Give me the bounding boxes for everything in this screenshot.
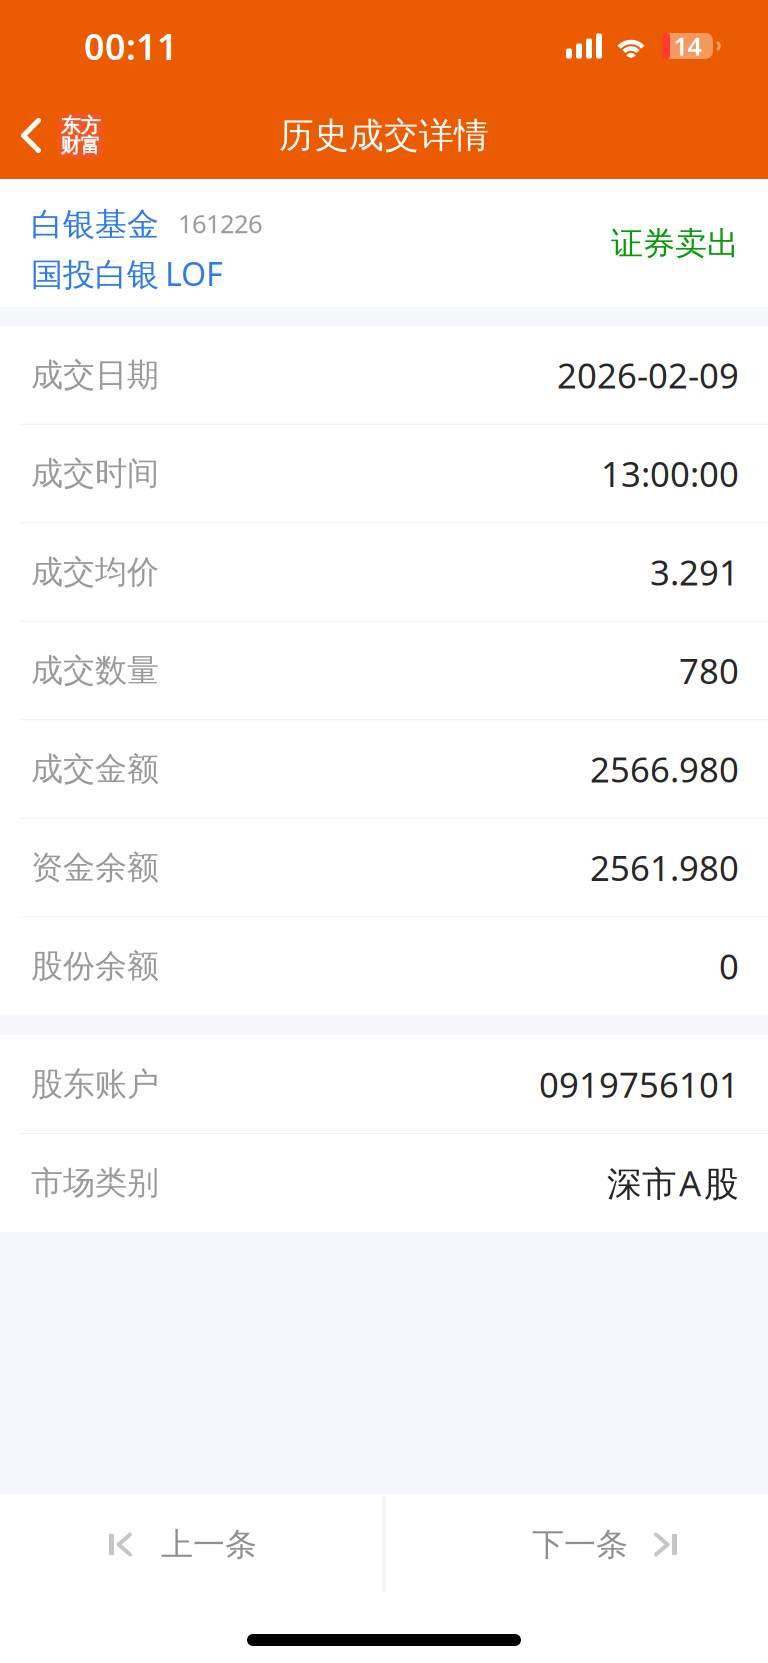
staticText: 资金余额 [31,848,159,887]
staticText: 深市 A 股 [607,1160,739,1206]
staticText: 国投白银 LOF [31,252,223,295]
staticText: 780 [679,647,739,693]
staticText: 161226 [178,206,262,240]
staticText: 00:11 [84,22,178,70]
staticText: 下一条 [532,1525,628,1564]
staticText: 14 [673,29,701,63]
staticText: 财富 [60,133,100,158]
staticText: 白银基金 [31,205,159,244]
staticText: 历史成交详情 [279,114,489,157]
button[interactable]: 上一条 [0,1494,383,1595]
staticText: 0 [719,943,739,989]
staticText: 成交数量 [31,651,159,690]
staticText: 证券卖出 [611,224,739,263]
staticText: 东方 [60,113,100,138]
staticText: 2026-02-09 [557,352,739,398]
staticText: 股份余额 [31,946,159,986]
staticText: 13:00:00 [601,450,739,496]
button[interactable]: 下一条 [384,1494,768,1595]
staticText: 成交时间 [31,454,159,493]
staticText: 2566.980 [590,746,739,792]
staticText: 上一条 [161,1525,257,1564]
staticText: 股东账户 [31,1065,159,1104]
staticText: 0919756101 [539,1061,739,1107]
staticText: 2561.980 [590,844,739,890]
staticText: 成交均价 [31,552,159,592]
staticText: 成交日期 [31,355,159,395]
button[interactable]: Back [0,100,104,170]
staticText: 成交金额 [31,749,159,789]
staticText: 3.291 [650,549,739,595]
staticText: 市场类别 [31,1163,159,1202]
